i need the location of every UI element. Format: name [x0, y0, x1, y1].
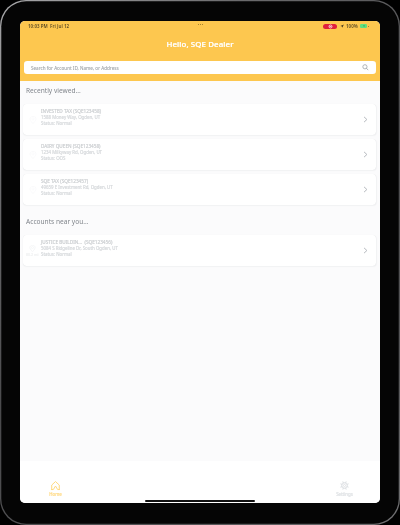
button[interactable]: DAIRY QUEEN (SQE123458) [23, 139, 376, 170]
staticText: Fri Jul 12 [50, 23, 70, 29]
staticText: 100% [346, 23, 358, 29]
staticText: Recently viewed... [26, 86, 81, 95]
staticText: Status: OOS [41, 155, 66, 161]
button[interactable]: Settings [324, 481, 364, 497]
staticText: Status: Normal [41, 251, 72, 257]
staticText: 5084 S Ridgeline Dr, South Ogden, UT [41, 245, 118, 251]
staticText: Search for Account ID, Name, or Address [31, 65, 119, 71]
staticText: 1234 Milkyway Rd, Ogden, UT [41, 149, 103, 155]
staticText: JUSTICE BUILDIN... (SQE123456) [41, 239, 113, 245]
button[interactable]: INVESTED TAX (SQE123458) [23, 104, 376, 135]
staticText: Home [49, 491, 62, 497]
staticText: 1588 Money Way, Ogden, UT [41, 114, 101, 120]
button[interactable]: Home [35, 481, 75, 497]
staticText: DAIRY QUEEN (SQE123458) [41, 143, 101, 149]
other: Search [362, 64, 369, 71]
staticText: Settings [336, 491, 353, 497]
staticText: 80.2 mi [26, 252, 39, 257]
staticText: Accounts near you... [26, 217, 89, 226]
staticText: Status: Normal [41, 190, 72, 196]
staticText: 49659 E Investment Rd, Ogden, UT [41, 184, 113, 190]
button[interactable]: 80.2 mi [23, 235, 376, 266]
staticText: Hello, SQE Dealer [166, 39, 234, 50]
button[interactable]: SQE TAX (SQE123457) [23, 174, 376, 205]
button[interactable]: Search for Account ID, Name, or Address [24, 61, 376, 74]
staticText: Status: Normal [41, 120, 72, 126]
staticText: SQE TAX (SQE123457) [41, 178, 89, 184]
staticText: 10:03 PM [28, 23, 48, 29]
staticText: INVESTED TAX (SQE123458) [41, 108, 101, 114]
